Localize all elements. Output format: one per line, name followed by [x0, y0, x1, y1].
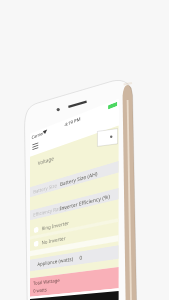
button[interactable]: Battery Size	[0, 227, 169, 269]
staticText: Voltage	[38, 123, 113, 152]
staticText: Battery Size	[16, 237, 127, 264]
